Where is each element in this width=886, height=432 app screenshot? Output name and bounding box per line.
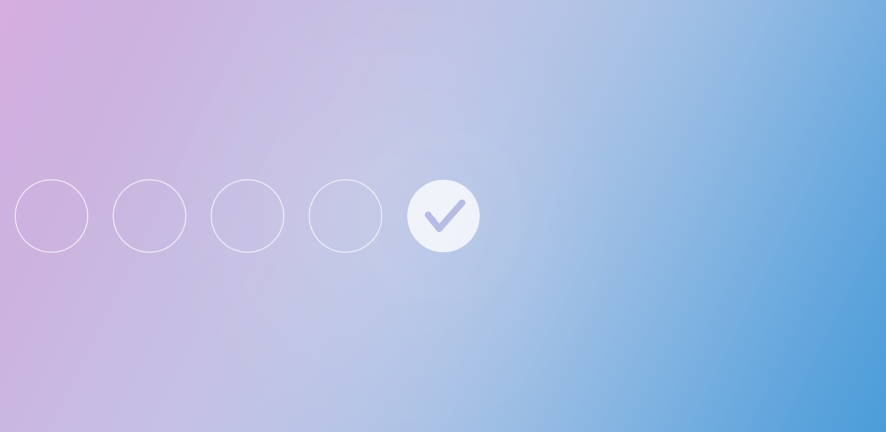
button[interactable]: Step 4, not started <box>309 180 382 252</box>
button[interactable]: Step 3, not started <box>211 180 284 252</box>
button[interactable]: Step 5, complete <box>407 180 480 252</box>
button[interactable]: Step 1, not started <box>15 180 88 252</box>
button[interactable]: Step 2, not started <box>113 180 186 252</box>
